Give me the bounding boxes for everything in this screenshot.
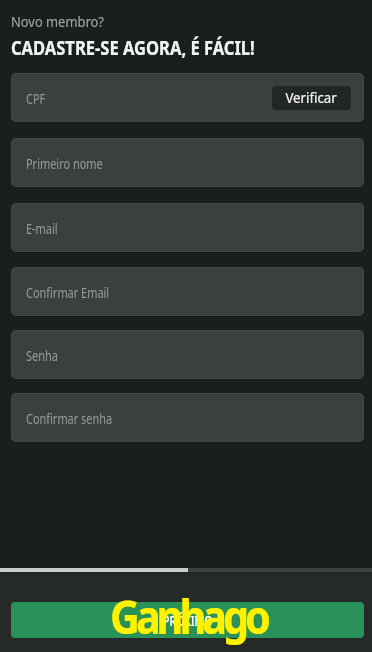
- staticText: Ganhago: [110, 584, 267, 648]
- staticText: Novo membro?: [11, 11, 104, 31]
- button[interactable]: Primeiro nome: [11, 138, 364, 187]
- staticText: Confirmar Email: [26, 284, 109, 302]
- button[interactable]: Confirmar Email: [11, 267, 364, 316]
- staticText: Confirmar senha: [26, 410, 113, 428]
- staticText: PRÓXIMO: [163, 611, 213, 630]
- staticText: Verificar: [285, 87, 338, 107]
- button[interactable]: Senha: [11, 330, 364, 379]
- button[interactable]: CPF: [11, 73, 364, 122]
- staticText: Primeiro nome: [26, 155, 103, 173]
- button[interactable]: PRÓXIMO: [11, 602, 364, 638]
- staticText: CADASTRE-SE AGORA, É FÁCIL!: [11, 35, 255, 61]
- staticText: E-mail: [26, 220, 58, 238]
- button[interactable]: E-mail: [11, 203, 364, 252]
- button[interactable]: Verificar: [272, 86, 351, 110]
- staticText: Senha: [26, 347, 58, 365]
- button[interactable]: Confirmar senha: [11, 393, 364, 442]
- staticText: CPF: [26, 90, 45, 108]
